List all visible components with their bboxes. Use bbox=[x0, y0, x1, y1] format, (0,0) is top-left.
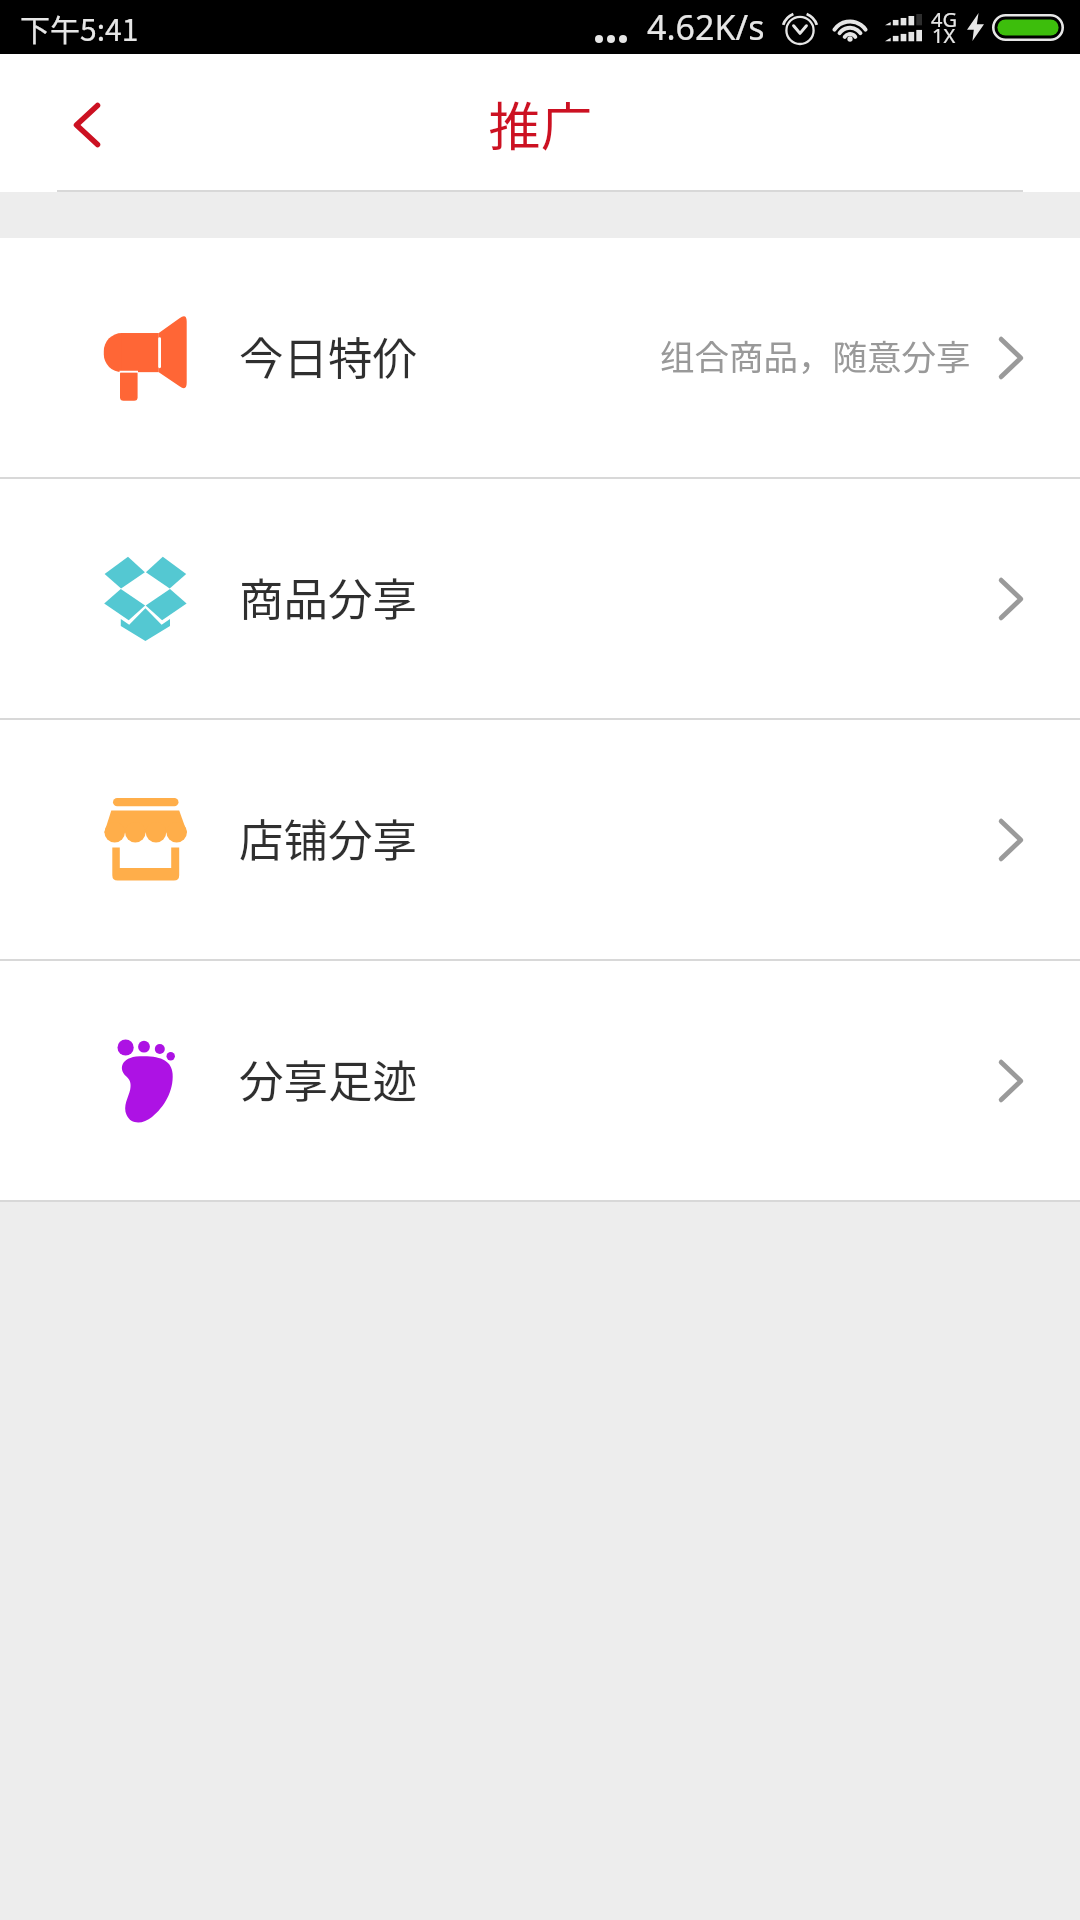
staticText: 店铺分享 bbox=[239, 805, 418, 869]
button[interactable]: 店铺分享 bbox=[0, 720, 1080, 959]
staticText: 下午5:41 bbox=[20, 6, 139, 49]
staticText: 1X bbox=[932, 22, 956, 49]
button[interactable]: 商品分享 bbox=[0, 479, 1080, 718]
staticText: 组合商品，随意分享 bbox=[660, 330, 971, 380]
staticText: 今日特价 bbox=[239, 323, 418, 387]
staticText: 4.62K/s bbox=[647, 4, 765, 50]
staticText: 商品分享 bbox=[239, 564, 418, 628]
staticText: 分享足迹 bbox=[239, 1046, 418, 1110]
button[interactable]: Back bbox=[32, 70, 142, 180]
staticText: 推广 bbox=[488, 86, 593, 161]
button[interactable]: 分享足迹 bbox=[0, 961, 1080, 1200]
button[interactable]: 今日特价 bbox=[0, 238, 1080, 477]
staticText: 4G bbox=[931, 6, 957, 33]
